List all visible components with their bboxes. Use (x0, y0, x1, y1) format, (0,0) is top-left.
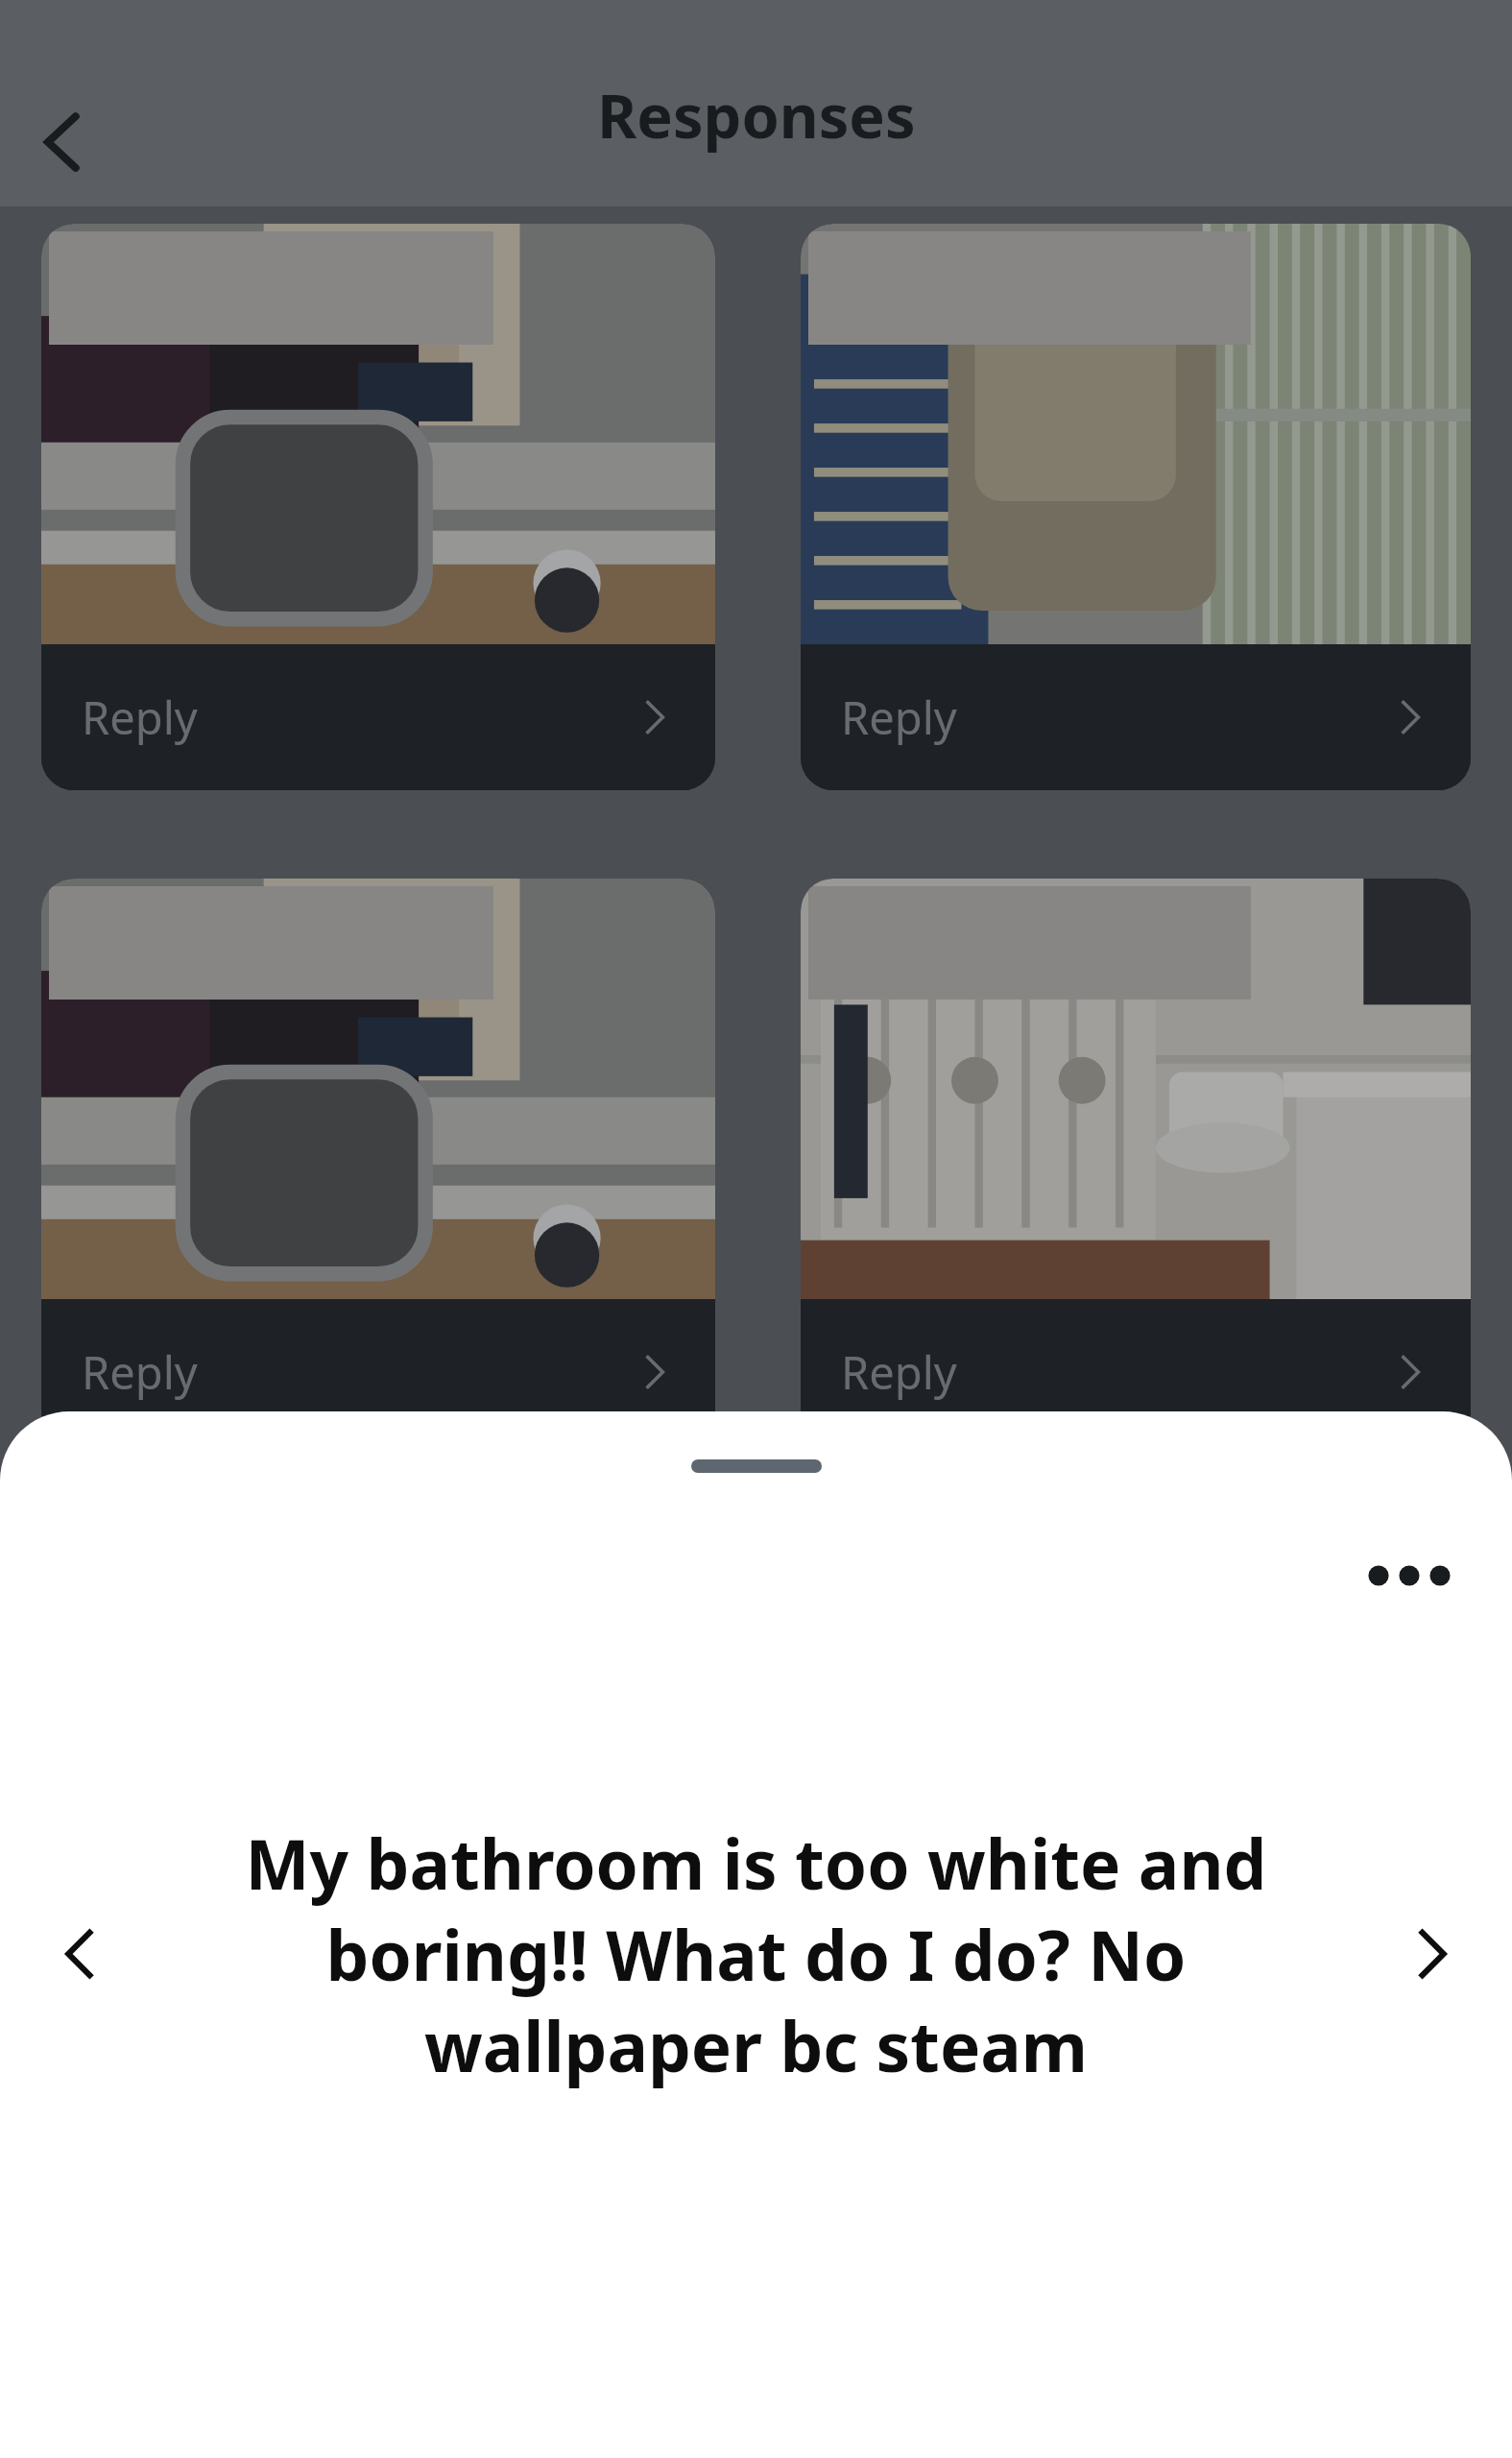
staticText: Responses (597, 74, 916, 157)
button[interactable]: Reply (41, 879, 715, 1445)
button[interactable]: More options (1353, 1519, 1466, 1632)
staticText: Reply (841, 687, 957, 748)
staticText: Reply (82, 687, 198, 748)
button[interactable]: Reply (801, 224, 1471, 790)
button[interactable]: Reply (801, 879, 1471, 1445)
button[interactable]: Reply (41, 224, 715, 790)
staticText: Reply (82, 1341, 198, 1403)
button[interactable]: Back (13, 92, 113, 192)
button[interactable]: Previous (31, 1904, 131, 2004)
staticText: Reply (841, 1341, 957, 1403)
button[interactable]: Next (1381, 1904, 1481, 2004)
staticText: My bathroom is too white and boring!! Wh… (168, 1817, 1344, 2091)
